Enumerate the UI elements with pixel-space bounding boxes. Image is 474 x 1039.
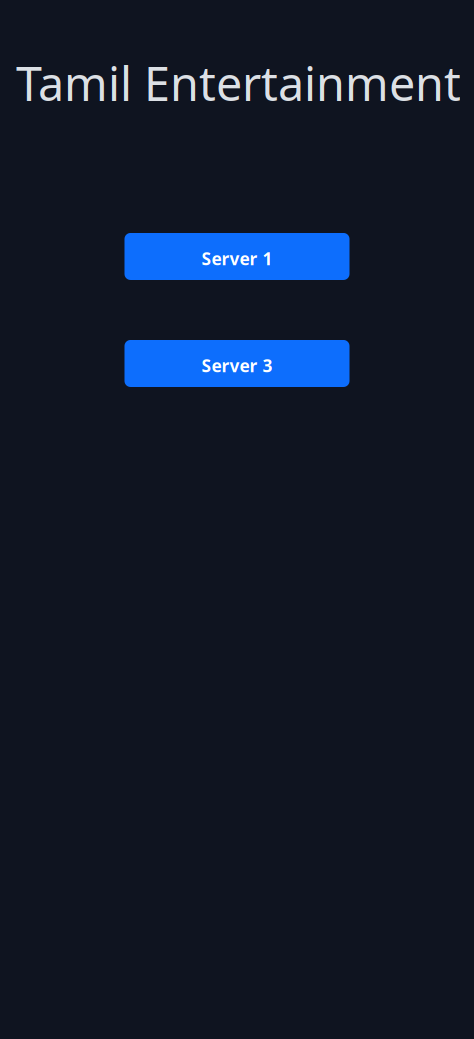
staticText: Server 1: [201, 247, 272, 270]
button[interactable]: Server 1: [124, 233, 349, 280]
staticText: Server 3: [201, 354, 272, 377]
staticText: Tamil Entertainment: [16, 52, 461, 114]
button[interactable]: Server 3: [124, 340, 349, 387]
